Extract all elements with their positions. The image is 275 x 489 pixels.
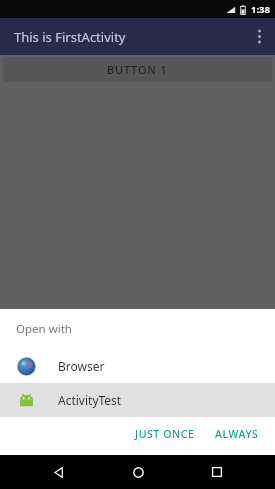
button[interactable]: Home [117,455,159,489]
staticText: JUST ONCE [135,427,195,441]
button[interactable]: BUTTON 1 [3,57,272,82]
staticText: 1:38 [251,3,270,16]
staticText: Open with [16,321,72,337]
staticText: ALWAYS [215,427,259,441]
button[interactable]: JUST ONCE [129,421,201,447]
button[interactable]: ALWAYS [209,421,265,447]
button[interactable]: Browser [0,349,275,383]
staticText: Browser [58,358,105,374]
staticText: BUTTON 1 [107,62,168,77]
staticText: ActivityTest [58,392,122,408]
button[interactable]: ActivityTest [0,383,275,417]
staticText: This is FirstActivity [14,28,126,46]
button[interactable]: More options [243,18,275,55]
button[interactable]: Back [37,455,79,489]
button[interactable]: Recent apps [196,455,238,489]
